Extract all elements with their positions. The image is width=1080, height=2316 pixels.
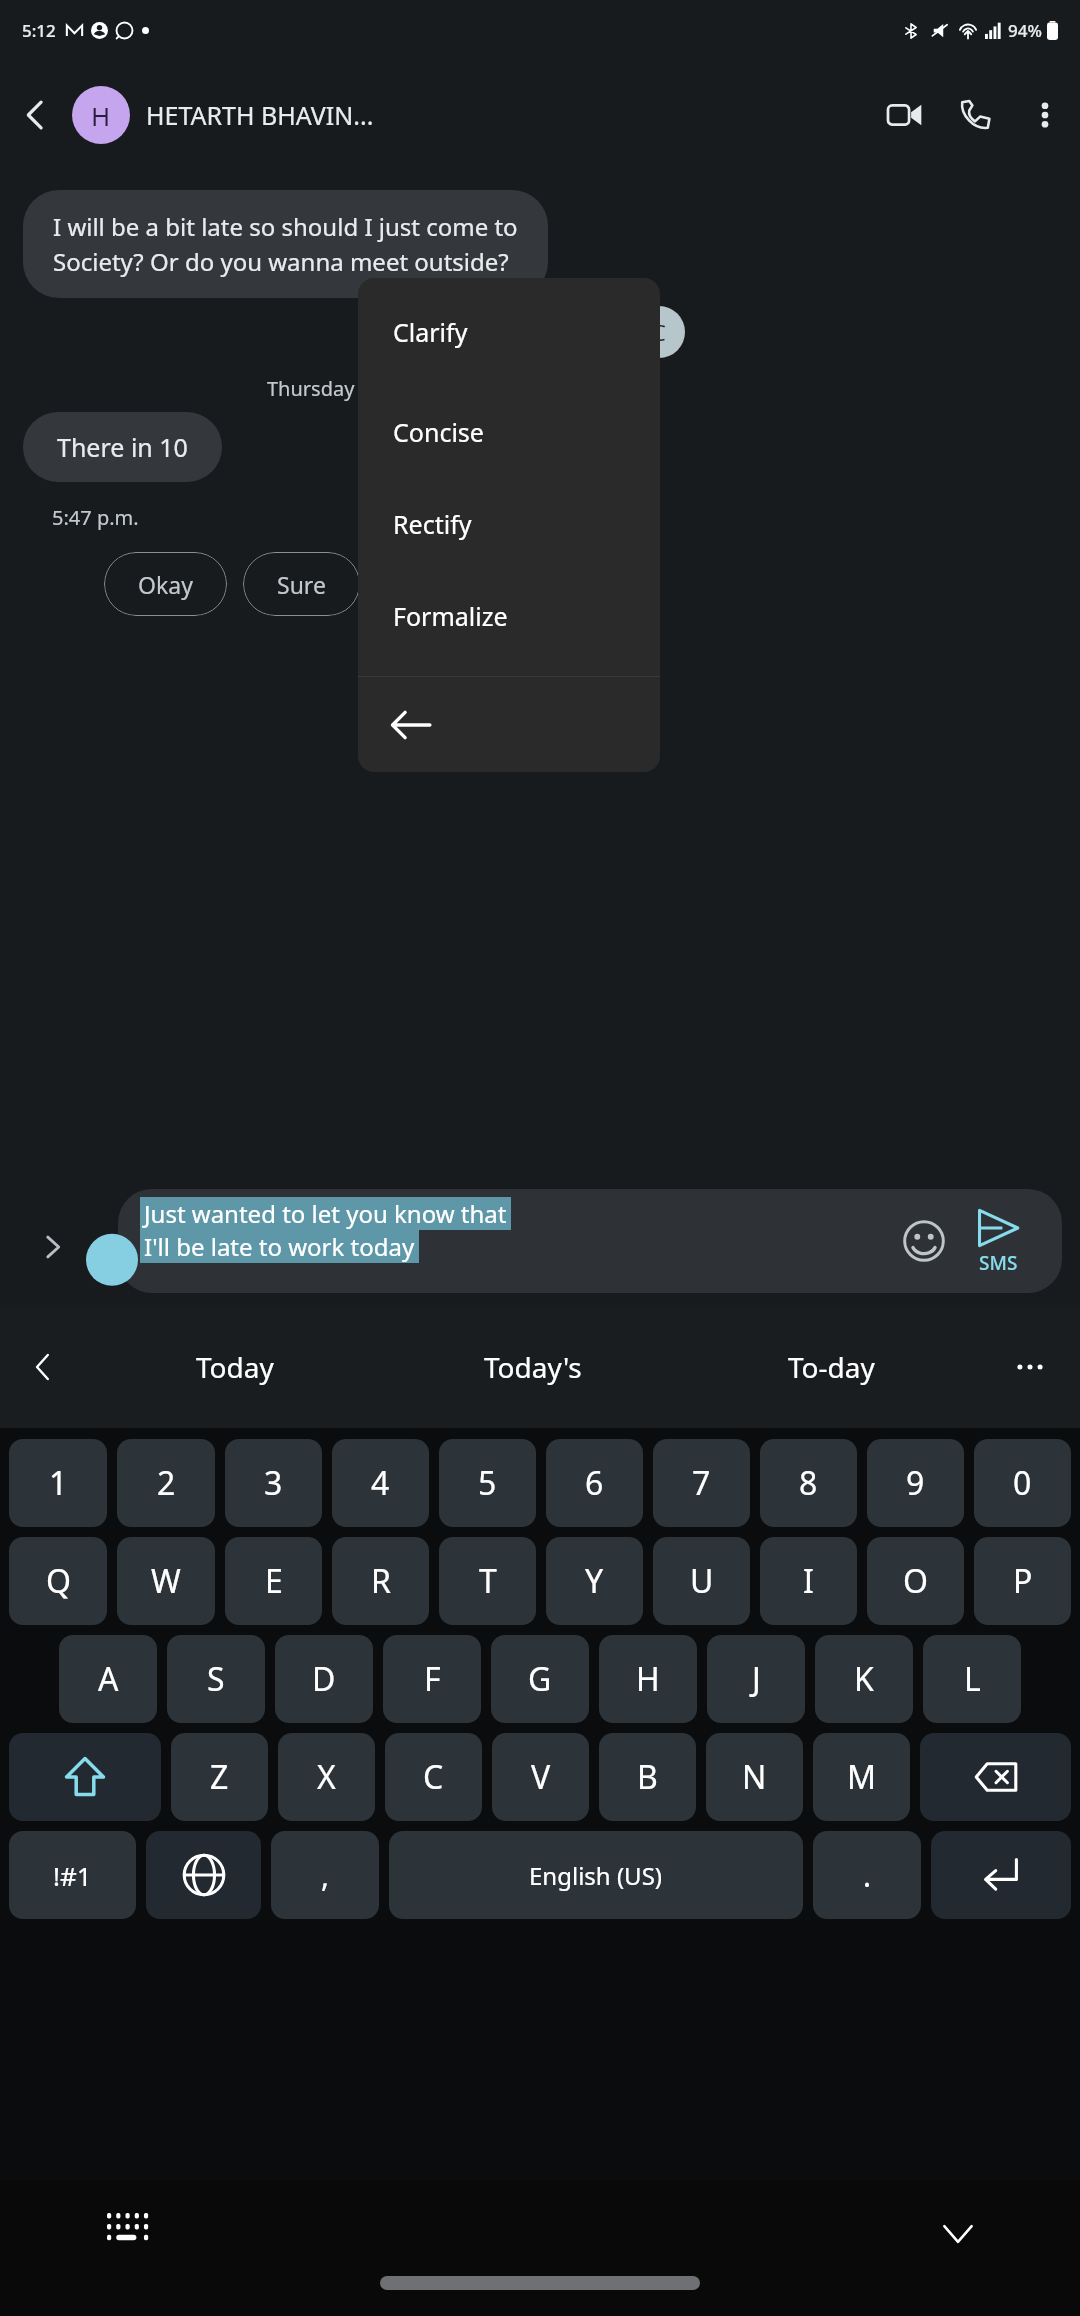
button[interactable]: 8 <box>760 1439 857 1527</box>
button[interactable]: 5 <box>439 1439 536 1527</box>
button[interactable]: J <box>707 1635 805 1723</box>
staticText: I'll be late to work today <box>144 1230 415 1263</box>
button[interactable]: W <box>117 1537 215 1625</box>
button[interactable]: A <box>59 1635 157 1723</box>
button[interactable]: V <box>492 1733 589 1821</box>
button[interactable]: Just wanted to let you know that <box>118 1189 1062 1293</box>
staticText: Formalize <box>393 599 508 633</box>
button[interactable]: Rectify <box>358 478 660 570</box>
button[interactable]: Video call <box>870 80 940 150</box>
staticText: I <box>803 1559 814 1603</box>
button[interactable]: More suggestions <box>980 1305 1080 1428</box>
button[interactable]: O <box>867 1537 964 1625</box>
button[interactable]: L <box>923 1635 1021 1723</box>
staticText: 4 <box>371 1461 390 1505</box>
staticText: L <box>964 1657 981 1701</box>
button[interactable]: 2 <box>117 1439 215 1527</box>
staticText: 8 <box>799 1461 818 1505</box>
button[interactable]: Okay <box>104 552 227 616</box>
button[interactable]: Enter <box>931 1831 1071 1919</box>
staticText: A <box>98 1657 119 1701</box>
staticText: X <box>317 1755 336 1799</box>
button[interactable]: E <box>225 1537 322 1625</box>
staticText: Z <box>210 1755 229 1799</box>
button[interactable]: Keyboard <box>96 2202 160 2266</box>
button[interactable]: 7 <box>653 1439 750 1527</box>
staticText: . <box>863 1855 872 1896</box>
staticText: J <box>752 1657 761 1701</box>
button[interactable]: Call <box>940 80 1010 150</box>
button[interactable]: Q <box>9 1537 107 1625</box>
button[interactable]: D <box>275 1635 373 1723</box>
button[interactable]: , <box>271 1831 379 1919</box>
button[interactable]: R <box>332 1537 429 1625</box>
staticText: To-day <box>788 1348 875 1386</box>
button[interactable]: Previous suggestions <box>0 1305 86 1428</box>
button[interactable]: Sure <box>243 552 360 616</box>
staticText: Okay <box>138 569 193 600</box>
button[interactable]: U <box>653 1537 750 1625</box>
button[interactable]: I <box>760 1537 857 1625</box>
staticText: Y <box>585 1559 604 1603</box>
button[interactable]: 4 <box>332 1439 429 1527</box>
button[interactable]: 6 <box>546 1439 643 1527</box>
button[interactable]: H <box>599 1635 697 1723</box>
staticText: E <box>265 1559 283 1603</box>
button[interactable]: I will be a bit late so should I just co… <box>23 190 548 298</box>
button[interactable]: K <box>815 1635 913 1723</box>
staticText: !#1 <box>53 1858 92 1893</box>
button[interactable]: P <box>974 1537 1071 1625</box>
button[interactable]: T <box>439 1537 536 1625</box>
staticText: There in 10 <box>57 430 188 464</box>
button[interactable]: Hide keyboard <box>926 2202 990 2266</box>
button[interactable]: X <box>278 1733 375 1821</box>
staticText: C <box>423 1755 444 1799</box>
button[interactable]: Back <box>358 677 660 772</box>
button[interactable]: Language <box>146 1831 261 1919</box>
button[interactable]: More options <box>1010 80 1080 150</box>
button[interactable]: 3 <box>225 1439 322 1527</box>
button[interactable]: There in 10 <box>23 412 222 482</box>
button[interactable]: F <box>383 1635 481 1723</box>
button[interactable]: Send SMS <box>958 1206 1038 1276</box>
button[interactable]: Concise <box>358 386 660 478</box>
button[interactable]: To-day <box>682 1305 980 1428</box>
button[interactable]: . <box>813 1831 921 1919</box>
button[interactable]: !#1 <box>9 1831 136 1919</box>
staticText: Rectify <box>393 507 472 541</box>
staticText: T <box>479 1559 497 1603</box>
button[interactable]: M <box>813 1733 910 1821</box>
button[interactable]: C <box>385 1733 482 1821</box>
button[interactable]: 1 <box>9 1439 107 1527</box>
staticText: 5 <box>478 1461 497 1505</box>
staticText: K <box>854 1657 874 1701</box>
staticText: Today's <box>484 1348 582 1386</box>
staticText: B <box>637 1755 658 1799</box>
button[interactable]: Shift <box>9 1733 161 1821</box>
staticText: Clarify <box>393 315 468 349</box>
button[interactable]: Expand <box>30 1224 76 1270</box>
button[interactable]: 0 <box>974 1439 1071 1527</box>
button[interactable]: Clarify <box>358 278 660 386</box>
button[interactable]: B <box>599 1733 696 1821</box>
button[interactable]: G <box>491 1635 589 1723</box>
staticText: U <box>690 1559 714 1603</box>
button[interactable]: Formalize <box>358 570 660 662</box>
staticText: 5:12 <box>22 19 56 42</box>
button[interactable]: Cool <box>376 552 493 616</box>
staticText: I will be a bit late so should I just co… <box>53 210 518 278</box>
staticText: M <box>847 1755 877 1799</box>
button[interactable]: Emoji <box>896 1213 952 1269</box>
button[interactable]: Back <box>0 79 72 151</box>
button[interactable]: 9 <box>867 1439 964 1527</box>
button[interactable]: Backspace <box>920 1733 1071 1821</box>
button[interactable]: HETARTH BHAVIN... <box>146 98 870 132</box>
button[interactable]: English (US) <box>389 1831 803 1919</box>
staticText: W <box>151 1559 181 1603</box>
button[interactable]: N <box>706 1733 803 1821</box>
button[interactable]: Today's <box>384 1305 682 1428</box>
button[interactable]: Today <box>86 1305 384 1428</box>
button[interactable]: S <box>167 1635 265 1723</box>
button[interactable]: Y <box>546 1537 643 1625</box>
button[interactable]: Z <box>171 1733 268 1821</box>
